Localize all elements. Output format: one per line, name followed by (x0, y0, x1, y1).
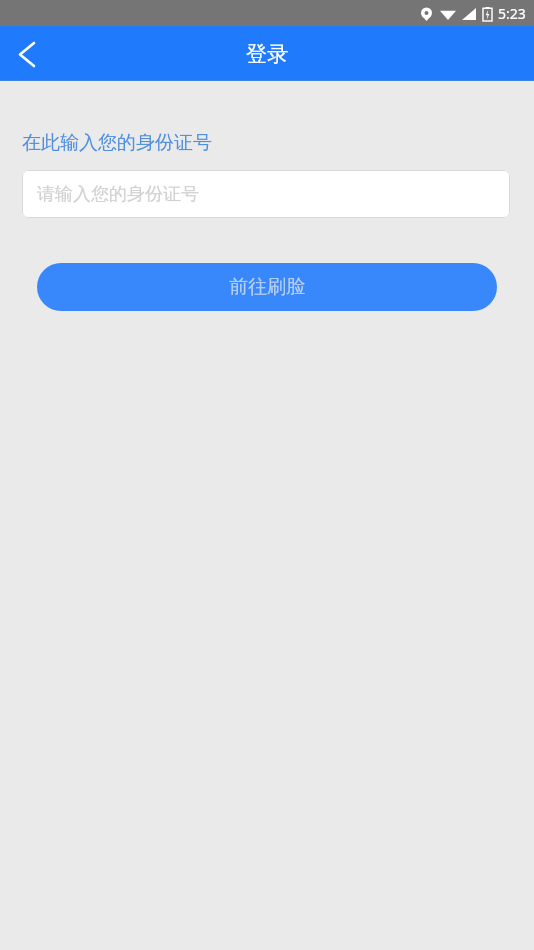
staticText: 5:23 (498, 4, 526, 23)
staticText: 前往刷脸 (229, 275, 305, 299)
button[interactable]: Back (0, 27, 54, 81)
button[interactable]: 请输入您的身份证号 (22, 170, 510, 218)
staticText: 请输入您的身份证号 (37, 183, 199, 206)
staticText: 登录 (246, 41, 288, 67)
button[interactable]: 前往刷脸 (37, 263, 497, 311)
staticText: 在此输入您的身份证号 (22, 131, 212, 155)
